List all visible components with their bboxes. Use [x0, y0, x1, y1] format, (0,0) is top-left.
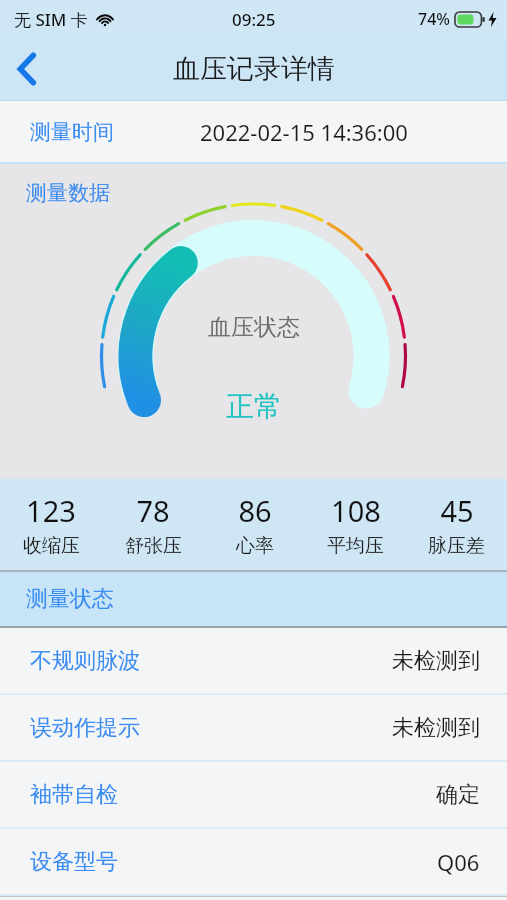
staticText: 血压状态	[208, 313, 300, 342]
staticText: 测量数据	[26, 180, 110, 206]
button[interactable]: 设备型号	[0, 829, 507, 894]
staticText: Q06	[437, 847, 480, 877]
staticText: 74%	[418, 8, 450, 30]
button[interactable]: 86	[204, 479, 305, 570]
staticText: 脉压差	[428, 534, 485, 558]
staticText: 舒张压	[125, 534, 182, 558]
staticText: 误动作提示	[30, 714, 140, 742]
button[interactable]: 袖带自检	[0, 762, 507, 827]
staticText: 测量时间	[30, 119, 114, 145]
button[interactable]: 误动作提示	[0, 695, 507, 760]
staticText: 未检测到	[392, 714, 480, 742]
button[interactable]: 45	[406, 479, 507, 570]
staticText: 血压记录详情	[173, 52, 335, 86]
button[interactable]: 123	[0, 479, 102, 570]
staticText: 无 SIM 卡	[14, 8, 88, 31]
staticText: 正常	[226, 389, 282, 424]
button[interactable]: 测量时间	[0, 101, 507, 162]
staticText: 确定	[436, 781, 480, 809]
button[interactable]: 108	[305, 479, 406, 570]
staticText: 2022-02-15 14:36:00	[200, 117, 408, 147]
staticText: 123	[26, 491, 76, 530]
staticText: 未检测到	[392, 647, 480, 675]
staticText: 09:25	[232, 8, 276, 31]
staticText: 不规则脉波	[30, 647, 140, 675]
button[interactable]: 78	[102, 479, 204, 570]
staticText: 45	[440, 491, 474, 530]
staticText: 86	[238, 491, 272, 530]
staticText: 心率	[236, 534, 274, 558]
button[interactable]: 不规则脉波	[0, 628, 507, 693]
staticText: 平均压	[327, 534, 384, 558]
staticText: 测量状态	[26, 585, 114, 613]
staticText: 设备型号	[30, 848, 118, 876]
staticText: 袖带自检	[30, 781, 118, 809]
staticText: 收缩压	[23, 534, 80, 558]
staticText: 78	[136, 491, 170, 530]
button[interactable]: Back	[0, 42, 54, 96]
staticText: 108	[331, 491, 381, 530]
